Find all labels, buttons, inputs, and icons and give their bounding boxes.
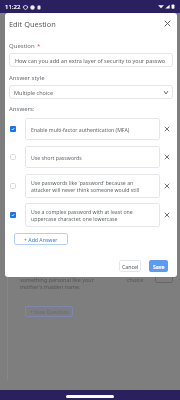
- staticText: Enable multi-factor authentication (MFA): [31, 126, 130, 133]
- button[interactable]: Cancel: [119, 260, 141, 272]
- button[interactable]: Use passwords like 'password' because an: [25, 174, 160, 198]
- button[interactable]: Use a complex password with at least one: [25, 203, 160, 227]
- staticText: How can you add an extra layer of securi…: [15, 57, 166, 64]
- staticText: Cancel: [122, 263, 139, 270]
- staticText: *: [37, 42, 41, 50]
- staticText: Use a complex password with at least one: [31, 208, 133, 215]
- staticText: Save: [153, 263, 165, 270]
- staticText: uppercase character, one lowercase: [31, 215, 118, 222]
- button[interactable]: Use short passwords: [25, 146, 160, 168]
- button[interactable]: Toggle answer: [7, 123, 19, 135]
- button[interactable]: Delete answer: [161, 123, 173, 135]
- button[interactable]: Delete answer: [161, 180, 173, 192]
- button[interactable]: Delete answer: [161, 209, 173, 221]
- button[interactable]: Toggle answer: [7, 180, 19, 192]
- staticText: Use passwords like 'password' because an: [31, 179, 134, 186]
- staticText: Edit Question: [9, 19, 56, 29]
- staticText: mother's maiden name.: [20, 283, 81, 290]
- staticText: attacker will never think someone would …: [31, 186, 140, 193]
- staticText: 11:22: [5, 3, 21, 11]
- button[interactable]: Toggle answer: [7, 209, 19, 221]
- staticText: Question: [9, 42, 37, 50]
- button[interactable]: Save: [149, 260, 168, 272]
- staticText: Answers:: [9, 105, 35, 113]
- staticText: Multiple choice: [14, 89, 164, 96]
- button[interactable]: + Add Answer: [14, 233, 68, 245]
- staticText: + Add Answer: [24, 236, 58, 243]
- button[interactable]: + New Question: [25, 306, 73, 317]
- button[interactable]: Toggle answer: [7, 151, 19, 163]
- staticText: Answer style: [9, 74, 45, 82]
- button[interactable]: Multiple choice: [9, 85, 173, 99]
- staticText: choice: [127, 276, 144, 283]
- button[interactable]: Delete answer: [161, 151, 173, 163]
- staticText: something personal like your: [20, 276, 94, 283]
- staticText: Use short passwords: [31, 154, 82, 161]
- button[interactable]: How can you add an extra layer of securi…: [9, 53, 173, 67]
- button[interactable]: Enable multi-factor authentication (MFA): [25, 118, 160, 140]
- button[interactable]: Close: [160, 16, 174, 30]
- staticText: + New Question: [30, 308, 69, 315]
